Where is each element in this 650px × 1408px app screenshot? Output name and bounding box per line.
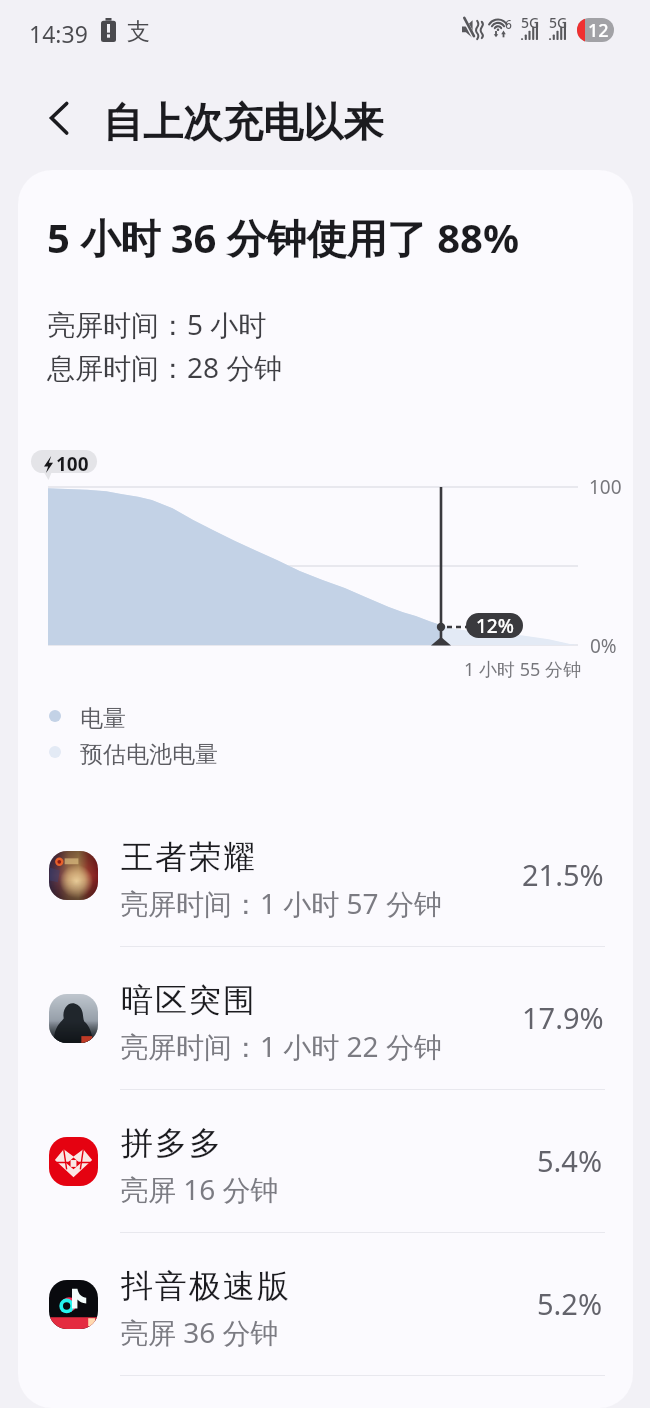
staticText: 100 xyxy=(56,451,89,477)
button[interactable]: 拼多多 xyxy=(18,1090,633,1233)
button[interactable]: 王者荣耀 xyxy=(18,804,633,947)
staticText: 14:39 xyxy=(29,18,88,49)
staticText: 自上次充电以来 xyxy=(103,97,383,147)
staticText: 抖音极速版 xyxy=(120,1266,290,1306)
staticText: 5G xyxy=(549,13,568,32)
staticText: 12 xyxy=(588,18,609,42)
staticText: 亮屏时间：1 小时 22 分钟 xyxy=(120,1027,442,1065)
staticText: 6 xyxy=(505,16,512,32)
staticText: 100 xyxy=(589,474,622,500)
staticText: 亮屏时间：1 小时 57 分钟 xyxy=(120,884,442,922)
button[interactable]: Back xyxy=(28,94,76,142)
button[interactable]: 暗区突围 xyxy=(18,947,633,1090)
staticText: 5.2% xyxy=(537,1284,603,1323)
staticText: 拼多多 xyxy=(120,1123,222,1163)
staticText: 亮屏 16 分钟 xyxy=(120,1170,279,1208)
staticText: 0% xyxy=(590,633,617,659)
staticText: 1 小时 55 分钟 xyxy=(464,657,581,682)
staticText: 5.4% xyxy=(537,1141,603,1180)
staticText: 支 xyxy=(127,17,150,46)
staticText: 亮屏时间：5 小时 xyxy=(47,305,267,343)
staticText: 17.9% xyxy=(522,998,604,1037)
staticText: 电量 xyxy=(80,704,126,733)
staticText: 12% xyxy=(476,613,514,638)
staticText: 暗区突围 xyxy=(120,980,256,1020)
staticText: 息屏时间：28 分钟 xyxy=(47,348,283,386)
staticText: 5 小时 36 分钟使用了 88% xyxy=(47,210,520,265)
staticText: 21.5% xyxy=(522,855,604,894)
staticText: 5G xyxy=(521,13,540,32)
button[interactable]: 抖音极速版 xyxy=(18,1233,633,1376)
staticText: 王者荣耀 xyxy=(120,837,256,877)
staticText: 预估电池电量 xyxy=(80,740,218,769)
staticText: 亮屏 36 分钟 xyxy=(120,1313,279,1351)
